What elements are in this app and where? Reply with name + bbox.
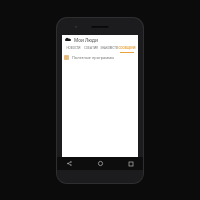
staticText: НОВОСТИ <box>66 46 81 50</box>
button[interactable]: Recent apps <box>125 158 136 169</box>
button[interactable]: Home <box>95 158 106 169</box>
staticText: Мои Люди <box>74 37 98 43</box>
button[interactable]: НОВОСТИ <box>64 45 82 53</box>
staticText: ЗНАКОМСТВА <box>100 46 118 50</box>
button[interactable]: Полезные программы <box>62 53 138 62</box>
button[interactable]: СОБЫТИЯ <box>82 45 100 53</box>
staticText: СОБЫТИЯ <box>84 46 98 50</box>
button[interactable]: СООБЩЕНИЯ <box>118 45 136 53</box>
button[interactable]: ЗНАКОМСТВА <box>100 45 118 53</box>
button[interactable]: App logo <box>62 35 138 45</box>
staticText: СООБЩЕНИЯ <box>118 46 136 50</box>
button[interactable]: Back <box>64 158 75 169</box>
staticText: Полезные программы <box>72 55 115 60</box>
other: App logo <box>65 37 71 43</box>
